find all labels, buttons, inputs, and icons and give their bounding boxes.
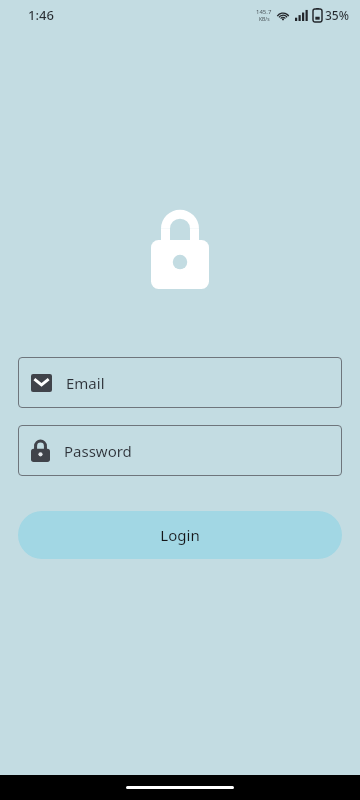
staticText: 1:46 [28,6,54,24]
button[interactable]: Login [18,511,342,559]
staticText: Password [64,441,132,461]
staticText: Email [66,373,105,393]
other: Password [31,440,50,462]
button[interactable]: Email [18,357,342,408]
button[interactable]: Password [18,425,342,476]
other: Email [31,374,52,392]
staticText: 35% [325,7,349,23]
staticText: Login [160,525,200,545]
staticText: KB/s [259,16,270,23]
other: Lock [151,213,209,289]
staticText: 145.7 [256,8,272,16]
